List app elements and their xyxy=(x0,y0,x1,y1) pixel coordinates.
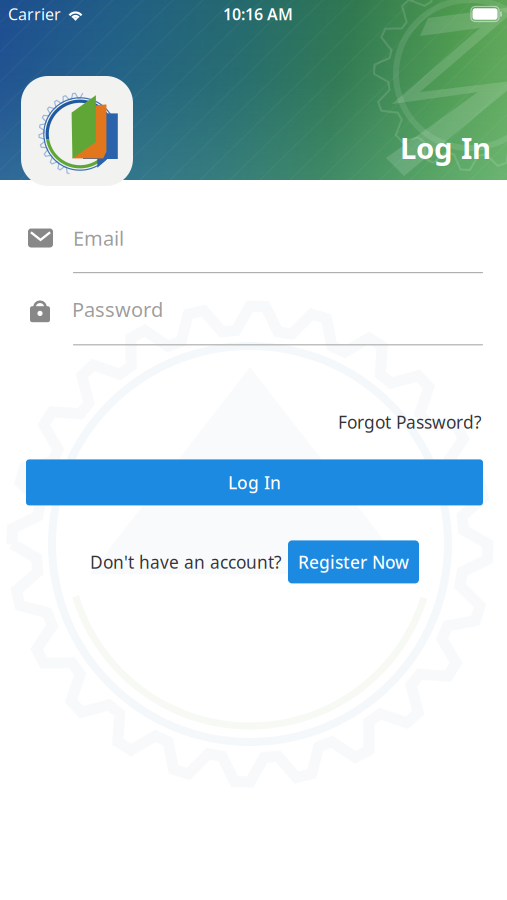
staticText: Log In xyxy=(228,471,281,494)
staticText: Carrier xyxy=(8,3,61,25)
staticText: Register Now xyxy=(298,550,409,573)
staticText: Email xyxy=(73,225,124,251)
staticText: 10:16 AM xyxy=(223,3,293,25)
staticText: Forgot Password? xyxy=(338,410,482,433)
button[interactable]: Register Now xyxy=(288,540,419,583)
staticText: Log In xyxy=(400,128,491,167)
staticText: Password xyxy=(72,296,163,322)
button[interactable]: Forgot Password? xyxy=(338,406,482,437)
staticText: Don't have an account? xyxy=(90,550,282,573)
button[interactable]: Log In xyxy=(26,459,483,505)
